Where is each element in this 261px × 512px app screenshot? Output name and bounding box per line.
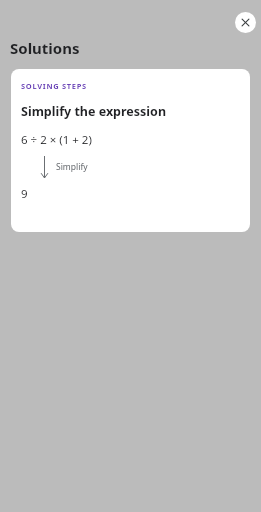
staticText: Simplify xyxy=(56,161,88,173)
staticText: 6 ÷ 2 × (1 + 2) xyxy=(21,132,92,148)
staticText: SOLVING STEPS xyxy=(21,81,87,91)
staticText: Solutions xyxy=(10,38,80,58)
staticText: 9 xyxy=(21,186,28,202)
button[interactable]: SOLVING STEPS xyxy=(11,69,250,232)
staticText: Simplify the expression xyxy=(21,103,167,120)
button[interactable]: Close xyxy=(235,12,256,33)
